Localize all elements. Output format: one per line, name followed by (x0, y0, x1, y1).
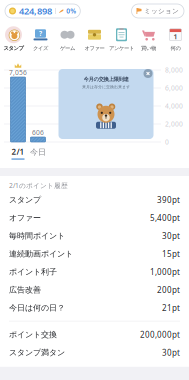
button[interactable]: オファー (81, 22, 108, 56)
button[interactable]: ゲーム (54, 22, 81, 56)
button[interactable]: スタンプ (0, 22, 27, 56)
staticText: 買い物 (141, 45, 156, 52)
staticText: 毎時間ポイント (9, 231, 65, 241)
staticText: 424,898 (19, 5, 52, 17)
staticText: 2,000 (165, 120, 183, 128)
button[interactable]: 1 (162, 22, 189, 56)
staticText: ポイント交換 (9, 330, 57, 339)
button[interactable]: ポイント利子 (0, 263, 189, 281)
staticText: 今月の交換上限到達 (83, 76, 128, 83)
staticText: 606 (32, 128, 44, 137)
staticText: 0 (165, 138, 169, 146)
staticText: 15pt (162, 248, 180, 259)
staticText: ゲーム (60, 45, 75, 52)
staticText: 1 (173, 32, 177, 41)
staticText: スタンプ (9, 195, 41, 205)
staticText: 200pt (157, 284, 180, 295)
staticText: ミッション (144, 7, 179, 15)
button[interactable]: 今日は何の日？ (0, 299, 189, 317)
staticText: 連続動画ポイント (9, 249, 73, 259)
button[interactable]: オファー (0, 209, 189, 227)
staticText: スタンプ満タン (9, 348, 65, 357)
staticText: 6,000 (165, 84, 183, 92)
staticText: オファー (9, 213, 41, 223)
staticText: 390pt (157, 194, 180, 205)
staticText: 広告改善 (9, 285, 41, 295)
button[interactable]: ? (27, 22, 54, 56)
button[interactable]: アンケート (108, 22, 135, 56)
staticText: 今日は何の日？ (9, 303, 65, 313)
button[interactable]: 買い物 (135, 22, 162, 56)
staticText: 何の (170, 45, 180, 52)
button[interactable]: ミッション (131, 4, 184, 18)
staticText: 200,000pt (140, 329, 180, 340)
staticText: 7,056 (9, 68, 27, 77)
staticText: 8,000 (165, 66, 183, 74)
staticText: アンケート (109, 45, 134, 52)
staticText: 0% (66, 7, 76, 15)
staticText: オファー (84, 45, 104, 52)
staticText: 2/1のポイント履歴 (9, 181, 68, 190)
button[interactable]: スタンプ (0, 191, 189, 209)
staticText: 来月は存分に交換出来ます (82, 85, 130, 89)
button[interactable]: 広告改善 (0, 281, 189, 299)
staticText: 5,400pt (150, 212, 180, 223)
staticText: 1,000pt (150, 266, 180, 277)
staticText: スタンプ (3, 45, 23, 52)
staticText: 今日 (30, 147, 46, 157)
staticText: 4,000 (165, 102, 183, 110)
button[interactable]: 424,898 (5, 4, 80, 18)
button[interactable]: 連続動画ポイント (0, 245, 189, 263)
staticText: ? (39, 29, 42, 38)
staticText: 30pt (162, 230, 180, 241)
button[interactable]: スタンプ満タン (0, 344, 189, 362)
staticText: ポイント利子 (9, 267, 57, 277)
staticText: 30pt (162, 347, 180, 358)
staticText: 21pt (162, 302, 180, 313)
staticText: 2/1 (11, 146, 24, 157)
button[interactable]: 閉じる (141, 67, 154, 80)
button[interactable]: ポイント交換 (0, 326, 189, 344)
staticText: クイズ (33, 45, 48, 52)
button[interactable]: 毎時間ポイント (0, 227, 189, 245)
